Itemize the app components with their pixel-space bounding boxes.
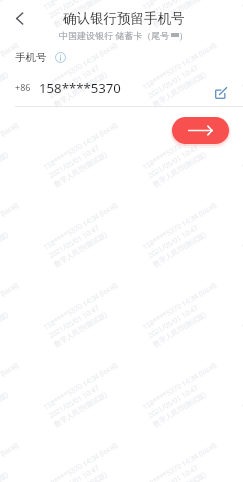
staticText: 158****5370 14:34 (local): [0, 200, 21, 252]
staticText: 158****5370: [39, 79, 121, 95]
staticText: 158****5370 14:34 (local): [141, 440, 219, 482]
staticText: 158****5370 14:34 (local): [42, 200, 120, 252]
staticText: 158****5370 14:34 (local): [141, 120, 219, 172]
staticText: 158****5370 14:34 (local): [42, 440, 120, 482]
staticText: 158****5370 14:34 (local): [42, 360, 120, 412]
staticText: ）: [179, 30, 188, 41]
staticText: 2021/05/01 10:47: [0, 223, 2, 261]
button[interactable]: Edit: [213, 85, 229, 101]
button[interactable]: Next: [172, 117, 229, 144]
staticText: 2021/05/01 10:47: [0, 463, 2, 482]
staticText: 手机号: [15, 51, 47, 64]
staticText: 2021/05/01 10:47: [47, 463, 101, 482]
staticText: 158****5370 14:34 (local): [0, 280, 21, 332]
staticText: 2021/05/01 10:47: [47, 383, 101, 421]
staticText: 2021/05/01 10:47: [146, 143, 200, 181]
staticText: 数字人民币(测试版): [151, 310, 209, 350]
staticText: 2021/05/01 10:47: [0, 143, 2, 181]
staticText: 数字人民币(测试版): [52, 390, 110, 430]
staticText: 2021/05/01 10:47: [146, 303, 200, 341]
staticText: 数字人民币(测试版): [0, 70, 11, 110]
staticText: 158****5370 14:34 (local): [0, 360, 21, 412]
button[interactable]: Back: [5, 4, 33, 32]
staticText: 2021/05/01 10:47: [47, 63, 101, 101]
staticText: 数字人民币(测试版): [151, 0, 209, 30]
staticText: 2021/05/01 10:47: [47, 303, 101, 341]
staticText: 数字人民币(测试版): [0, 150, 11, 190]
staticText: 158****5370 14:34 (local): [42, 0, 120, 12]
staticText: 数字人民币(测试版): [52, 0, 110, 30]
staticText: 158****5370 14:34 (local): [0, 120, 21, 172]
staticText: 数字人民币(测试版): [52, 310, 110, 350]
staticText: 158****5370 14:34 (local): [0, 40, 21, 92]
staticText: 158****5370 14:34 (local): [42, 40, 120, 92]
staticText: 158****5370 14:34 (local): [0, 440, 21, 482]
button[interactable]: Info: [53, 50, 67, 64]
staticText: +86: [15, 81, 31, 93]
staticText: 2021/05/01 10:47: [146, 223, 200, 261]
staticText: 2021/05/01 10:47: [146, 463, 200, 482]
staticText: 158****5370 14:34 (local): [141, 280, 219, 332]
staticText: 2021/05/01 10:47: [146, 63, 200, 101]
staticText: 数字人民币(测试版): [0, 310, 11, 350]
staticText: 数字人民币(测试版): [52, 150, 110, 190]
staticText: 数字人民币(测试版): [52, 470, 110, 482]
staticText: 数字人民币(测试版): [0, 230, 11, 270]
staticText: 数字人民币(测试版): [0, 470, 11, 482]
staticText: 2021/05/01 10:47: [0, 383, 2, 421]
staticText: 158****5370 14:34 (local): [42, 120, 120, 172]
staticText: 数字人民币(测试版): [151, 230, 209, 270]
staticText: 158****5370 14:34 (local): [141, 0, 219, 12]
staticText: 2021/05/01 10:47: [47, 223, 101, 261]
staticText: 数字人民币(测试版): [151, 470, 209, 482]
staticText: 2021/05/01 10:47: [146, 383, 200, 421]
staticText: 158****5370 14:34 (local): [141, 200, 219, 252]
staticText: 158****5370 14:34 (local): [141, 360, 219, 412]
staticText: 2021/05/01 10:47: [0, 63, 2, 101]
staticText: 数字人民币(测试版): [151, 390, 209, 430]
staticText: 数字人民币(测试版): [0, 390, 11, 430]
staticText: 中国建设银行 储蓄卡（尾号: [59, 29, 170, 41]
staticText: 2021/05/01 10:47: [0, 0, 2, 21]
staticText: 数字人民币(测试版): [151, 70, 209, 110]
staticText: 数字人民币(测试版): [151, 150, 209, 190]
staticText: 158****5370 14:34 (local): [42, 280, 120, 332]
staticText: 2021/05/01 10:47: [47, 0, 101, 21]
staticText: 数字人民币(测试版): [52, 70, 110, 110]
staticText: 2021/05/01 10:47: [146, 0, 200, 21]
staticText: 2021/05/01 10:47: [47, 143, 101, 181]
staticText: 数字人民币(测试版): [52, 230, 110, 270]
staticText: 确认银行预留手机号: [63, 10, 185, 27]
staticText: 158****5370 14:34 (local): [141, 40, 219, 92]
staticText: 2021/05/01 10:47: [0, 303, 2, 341]
